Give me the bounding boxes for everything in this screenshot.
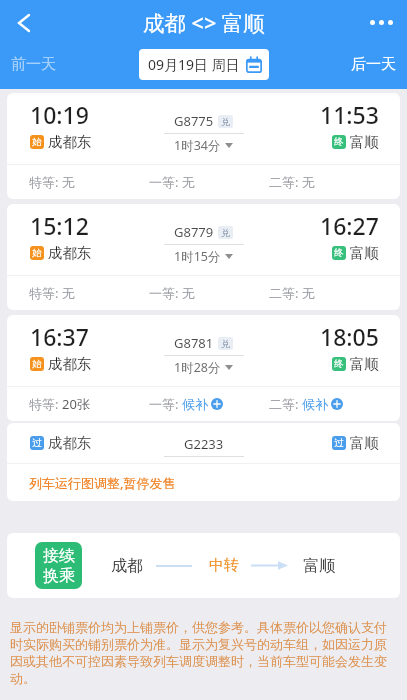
staticText: 18:05 <box>320 321 379 352</box>
staticText: 成都东 <box>48 355 92 373</box>
staticText: 后一天 <box>351 55 396 74</box>
staticText: 1时28分 <box>174 359 221 376</box>
staticText: 始 <box>32 358 42 370</box>
staticText: 换乘 <box>43 566 75 586</box>
staticText: 候补 <box>182 396 208 412</box>
button[interactable]: 15:12 <box>7 204 400 310</box>
staticText: 列车运行图调整,暂停发售 <box>29 474 176 492</box>
staticText: 中转 <box>209 556 239 575</box>
staticText: 过 <box>334 437 344 449</box>
staticText: 始 <box>32 136 42 148</box>
staticText: 一等: <box>149 173 182 191</box>
staticText: 二等: <box>269 395 302 413</box>
staticText: G2233 <box>184 435 224 453</box>
staticText: 成都东 <box>48 434 92 452</box>
staticText: 始 <box>32 247 42 259</box>
staticText: 前一天 <box>11 55 56 74</box>
staticText: G8775 <box>174 112 214 130</box>
button[interactable]: 过 <box>7 423 400 501</box>
staticText: 富顺 <box>350 355 379 373</box>
staticText: 15:12 <box>30 210 89 241</box>
staticText: 富顺 <box>350 434 379 452</box>
staticText: 终 <box>334 358 344 370</box>
staticText: 16:37 <box>30 321 89 352</box>
staticText: 09月19日 周日 <box>148 55 240 74</box>
staticText: 过 <box>32 437 42 449</box>
staticText: G8781 <box>174 334 214 352</box>
staticText: 富顺 <box>350 133 379 151</box>
staticText: 兑 <box>221 227 230 238</box>
staticText: 无 <box>182 285 195 301</box>
staticText: 富顺 <box>350 244 379 262</box>
staticText: 兑 <box>221 116 230 127</box>
staticText: 成都 <box>111 556 143 576</box>
staticText: 成都 <> 富顺 <box>143 8 265 37</box>
button[interactable]: 16:37 <box>7 315 400 421</box>
staticText: 10:19 <box>30 99 89 130</box>
button[interactable]: More options <box>359 0 407 45</box>
staticText: 二等: <box>269 173 302 191</box>
staticText: 1时34分 <box>174 137 221 154</box>
staticText: 兑 <box>221 338 230 349</box>
staticText: 终 <box>334 136 344 148</box>
staticText: 无 <box>62 174 75 190</box>
staticText: 无 <box>62 285 75 301</box>
staticText: 一等: <box>149 395 182 413</box>
staticText: 显示的卧铺票价均为上铺票价，供您参考。具体票价以您确认支付时实际购买的铺别票价为… <box>10 619 399 687</box>
staticText: G8779 <box>174 223 214 241</box>
staticText: 11:53 <box>320 99 379 130</box>
staticText: 特等: <box>29 284 62 302</box>
staticText: 特等: <box>29 173 62 191</box>
staticText: 无 <box>302 174 315 190</box>
staticText: 成都东 <box>48 244 92 262</box>
staticText: 成都东 <box>48 133 92 151</box>
staticText: 终 <box>334 247 344 259</box>
button[interactable]: 09月19日 周日 <box>139 49 269 80</box>
staticText: 16:27 <box>320 210 379 241</box>
staticText: 特等: <box>29 395 62 413</box>
staticText: 富顺 <box>303 556 335 576</box>
staticText: 20张 <box>62 395 90 413</box>
button[interactable]: 10:19 <box>7 93 400 199</box>
staticText: 候补 <box>302 396 328 412</box>
button[interactable]: 后一天 <box>339 48 407 80</box>
button[interactable]: 前一天 <box>0 48 68 80</box>
staticText: 一等: <box>149 284 182 302</box>
staticText: 无 <box>182 174 195 190</box>
staticText: 二等: <box>269 284 302 302</box>
staticText: 无 <box>302 285 315 301</box>
button[interactable]: Back <box>0 0 48 45</box>
button[interactable]: 接续 <box>7 533 400 598</box>
staticText: 接续 <box>43 546 75 566</box>
staticText: 1时15分 <box>174 248 221 265</box>
